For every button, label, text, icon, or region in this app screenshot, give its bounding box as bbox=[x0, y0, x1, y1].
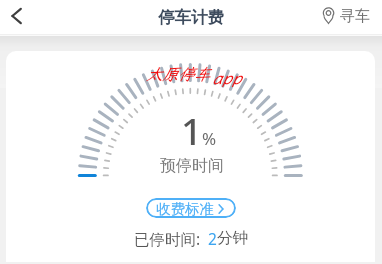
button[interactable]: Back bbox=[1, 1, 31, 31]
button[interactable]: 收费标准 bbox=[146, 198, 236, 218]
staticText: 已停时间: bbox=[134, 228, 201, 249]
staticText: 寻车 bbox=[340, 7, 370, 26]
staticText: 预停时间 bbox=[160, 156, 224, 176]
staticText: 分钟 bbox=[217, 228, 248, 248]
staticText: app bbox=[212, 66, 242, 88]
staticText: % bbox=[202, 127, 217, 150]
staticText: 收费标准 bbox=[156, 200, 214, 218]
button[interactable]: 寻车 bbox=[320, 5, 370, 24]
staticText: 1 bbox=[181, 105, 203, 155]
staticText: 2 bbox=[208, 228, 217, 249]
staticText: 停车计费 bbox=[158, 7, 224, 28]
staticText: 太原停车 bbox=[146, 63, 211, 84]
